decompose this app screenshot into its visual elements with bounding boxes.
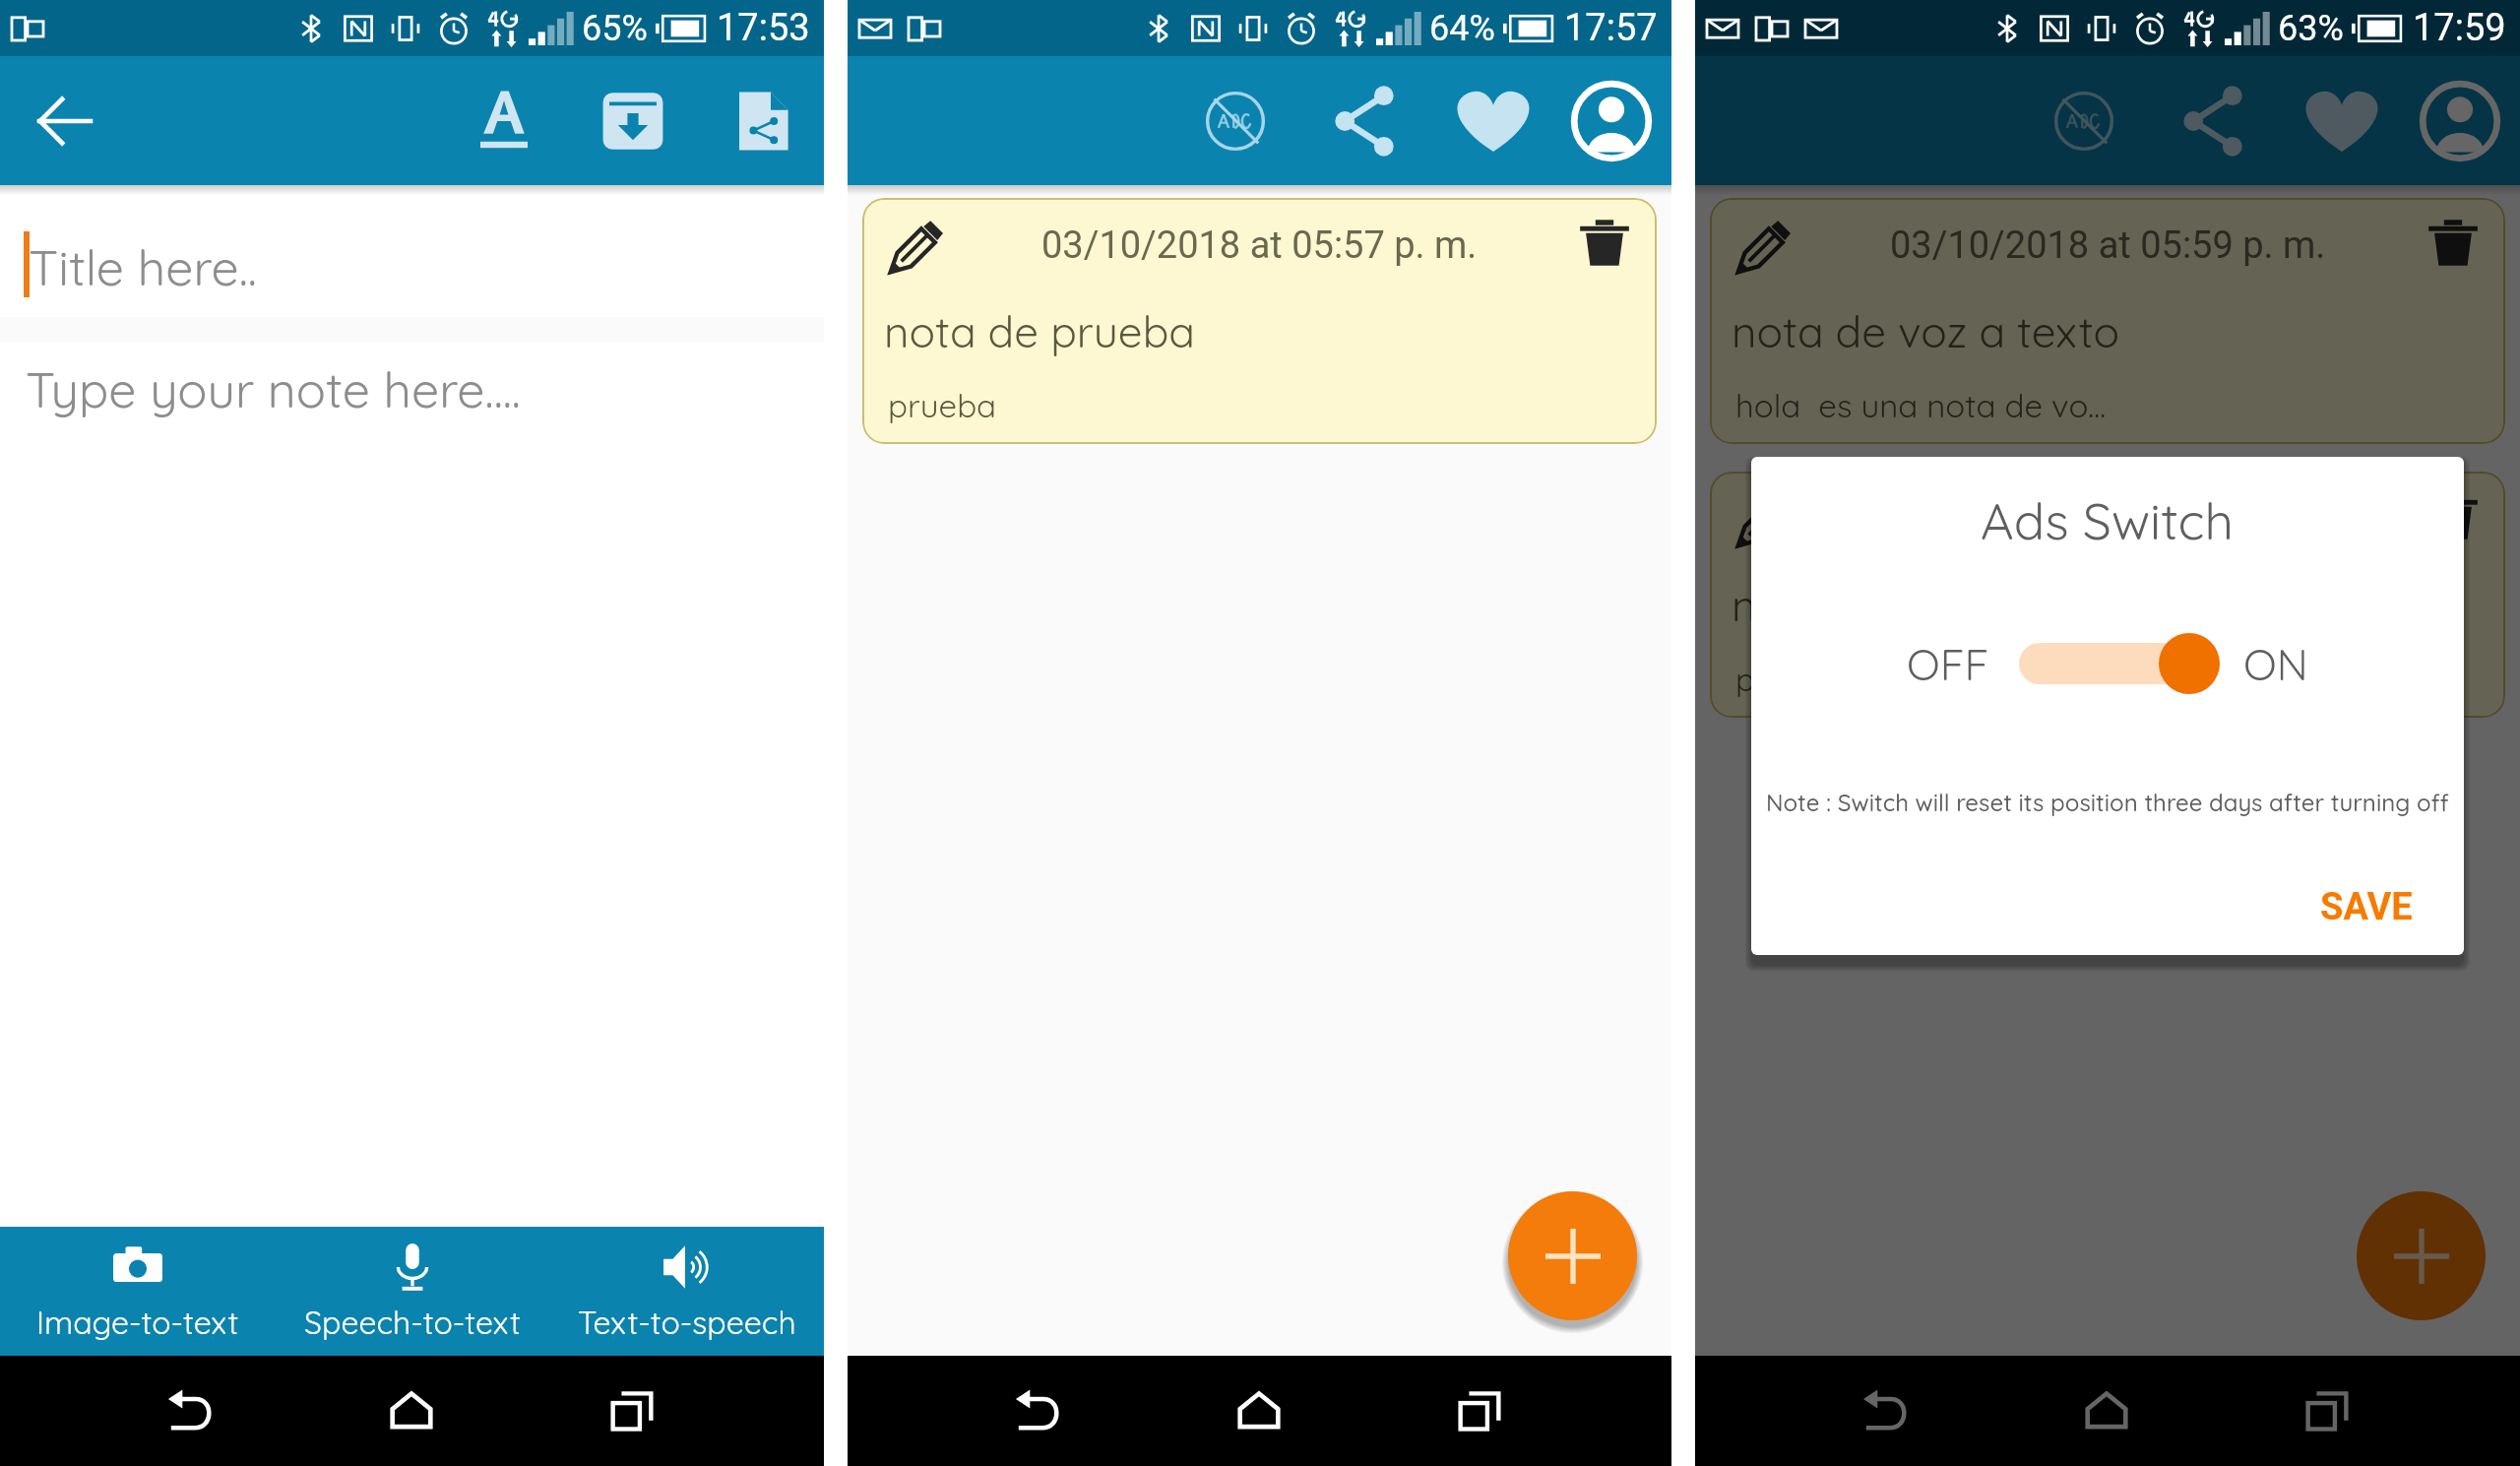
button[interactable]: Image-to-text — [0, 1227, 275, 1356]
button[interactable]: SAVE — [2312, 877, 2421, 937]
button[interactable]: Text-to-speech — [549, 1227, 824, 1356]
button[interactable]: Edit — [886, 220, 943, 277]
staticText: 03/10/2018 at 05:57 p. m. — [1041, 223, 1478, 268]
staticText: prueba — [888, 385, 997, 425]
staticText: 03/10/2018 at 05:59 p. m. — [1890, 223, 2326, 268]
button[interactable]: Add note — [1508, 1191, 1637, 1320]
button[interactable]: Back — [997, 1370, 1078, 1451]
button[interactable]: Back — [30, 86, 100, 157]
staticText: 64% — [1429, 8, 1495, 49]
button[interactable]: Add note — [2357, 1191, 2486, 1320]
button[interactable]: Ads switch — [1193, 79, 1278, 163]
button[interactable]: Home — [2066, 1370, 2147, 1451]
button[interactable]: Ads switch — [2042, 79, 2126, 163]
button[interactable]: Delete — [1578, 216, 1631, 269]
staticText: Ads Switch — [1981, 488, 2235, 552]
staticText: 17:57 — [1564, 6, 1658, 50]
button[interactable]: Ads toggle — [2019, 632, 2220, 695]
button[interactable]: Edit — [1733, 493, 1791, 550]
staticText: Note : Switch will reset its position th… — [1751, 788, 2464, 817]
staticText: nota de voz a texto — [1732, 304, 2120, 358]
button[interactable]: Edit — [1710, 472, 2505, 718]
button[interactable]: Recents — [592, 1370, 672, 1451]
staticText: Type your note here.... — [26, 358, 521, 420]
button[interactable]: Share file — [724, 82, 802, 160]
staticText: Title here.. — [29, 236, 257, 298]
staticText: Speech-to-text — [304, 1303, 521, 1342]
button[interactable]: Delete — [2426, 216, 2480, 269]
button[interactable]: Share — [2171, 79, 2255, 163]
button[interactable]: Favorites — [2299, 79, 2384, 163]
button[interactable]: Recents — [2287, 1370, 2367, 1451]
button[interactable]: Save note — [594, 82, 672, 160]
button[interactable]: Back — [150, 1370, 230, 1451]
button[interactable]: Back — [1845, 1370, 1925, 1451]
button[interactable]: Profile — [1567, 77, 1656, 165]
button[interactable]: Type your note here.... — [0, 343, 824, 1227]
button[interactable]: Home — [371, 1370, 452, 1451]
staticText: 17:59 — [2413, 6, 2506, 50]
button[interactable]: Title here.. — [0, 185, 824, 317]
button[interactable]: Edit — [1733, 220, 1791, 277]
button[interactable]: Recents — [1439, 1370, 1520, 1451]
button[interactable]: Edit — [862, 198, 1657, 444]
button[interactable]: Share — [1322, 79, 1407, 163]
staticText: Image-to-text — [36, 1303, 239, 1342]
staticText: SAVE — [2320, 885, 2413, 929]
staticText: Text-to-speech — [578, 1303, 796, 1342]
staticText: 17:53 — [717, 6, 810, 50]
button[interactable]: Delete — [2426, 489, 2480, 542]
staticText: ON — [2243, 637, 2308, 691]
button[interactable]: Edit — [1710, 198, 2505, 444]
staticText: nota de prueba — [884, 304, 1195, 358]
button[interactable]: Speech-to-text — [275, 1227, 549, 1356]
button[interactable]: Text format — [465, 82, 543, 160]
staticText: nota de prueba — [1732, 578, 2043, 632]
staticText: 63% — [2278, 8, 2344, 49]
button[interactable]: Home — [1219, 1370, 1299, 1451]
staticText: hola es una nota de vo... — [1735, 385, 2107, 425]
staticText: prueba — [1735, 659, 1845, 699]
staticText: 65% — [582, 8, 648, 49]
staticText: OFF — [1907, 637, 1989, 691]
button[interactable]: Favorites — [1451, 79, 1536, 163]
staticText: 03/10/2018 at 05:57 p. m. — [1890, 497, 2326, 542]
button[interactable]: Profile — [2416, 77, 2504, 165]
